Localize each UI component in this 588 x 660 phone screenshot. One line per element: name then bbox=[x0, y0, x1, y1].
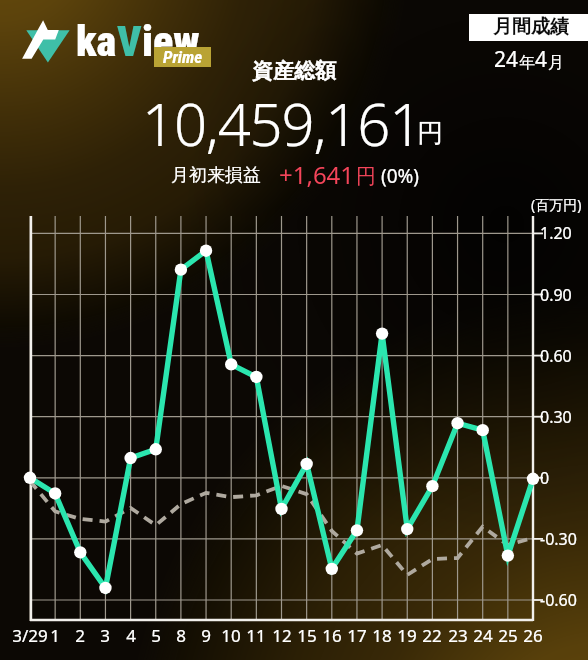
staticText: 0.60 bbox=[540, 345, 572, 367]
staticText: 15 bbox=[297, 624, 317, 647]
staticText: 1 bbox=[50, 624, 60, 647]
staticText: (百万円) bbox=[531, 195, 582, 214]
staticText: 23 bbox=[448, 624, 468, 647]
staticText: +1,641 bbox=[279, 158, 355, 191]
staticText: 17 bbox=[347, 624, 367, 647]
staticText: 円 bbox=[417, 117, 443, 150]
staticText: 0.90 bbox=[540, 284, 572, 306]
staticText: 月 bbox=[548, 53, 564, 73]
staticText: (0%) bbox=[381, 163, 420, 189]
staticText: 年 bbox=[519, 53, 535, 73]
staticText: 9 bbox=[201, 624, 211, 647]
staticText: 12 bbox=[272, 624, 292, 647]
staticText: 24 bbox=[473, 624, 493, 647]
staticText: 0 bbox=[540, 467, 550, 489]
staticText: 円 bbox=[356, 164, 376, 189]
staticText: 10 bbox=[221, 624, 241, 647]
staticText: 24 bbox=[494, 45, 519, 74]
staticText: 5 bbox=[151, 624, 161, 647]
staticText: V bbox=[117, 17, 142, 66]
staticText: ka bbox=[76, 17, 117, 66]
staticText: 3/29 bbox=[12, 624, 48, 647]
staticText: 3 bbox=[100, 624, 110, 647]
staticText: 10,459,161 bbox=[142, 84, 422, 163]
button[interactable]: 月間成績 bbox=[469, 14, 588, 41]
staticText: 26 bbox=[523, 624, 543, 647]
staticText: Prime bbox=[163, 47, 203, 67]
staticText: 18 bbox=[372, 624, 392, 647]
staticText: 4 bbox=[126, 624, 136, 647]
staticText: 1.20 bbox=[540, 222, 572, 244]
staticText: 25 bbox=[498, 624, 518, 647]
staticText: iew bbox=[142, 17, 200, 66]
staticText: 4 bbox=[535, 45, 548, 74]
staticText: 2 bbox=[75, 624, 85, 647]
staticText: 16 bbox=[322, 624, 342, 647]
staticText: -0.60 bbox=[540, 589, 577, 611]
staticText: 月初来損益 bbox=[171, 164, 261, 187]
staticText: 0.30 bbox=[540, 406, 572, 428]
staticText: 19 bbox=[397, 624, 417, 647]
staticText: 22 bbox=[422, 624, 442, 647]
staticText: 資産総額 bbox=[252, 58, 336, 84]
staticText: 月間成績 bbox=[493, 15, 569, 39]
staticText: 8 bbox=[176, 624, 186, 647]
staticText: -0.30 bbox=[540, 528, 577, 550]
staticText: 11 bbox=[246, 624, 266, 647]
other: kaView Prime bbox=[20, 14, 72, 64]
